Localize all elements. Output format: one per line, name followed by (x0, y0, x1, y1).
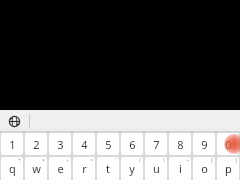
button[interactable]: 3 (49, 133, 71, 155)
button[interactable]: w (25, 157, 47, 180)
staticText: r (82, 161, 87, 176)
staticText: 8 (177, 137, 184, 152)
button[interactable]: u (145, 157, 167, 180)
staticText: + (18, 157, 21, 164)
staticText: 0 (225, 137, 232, 152)
staticText: u (153, 161, 160, 176)
staticText: \ (163, 157, 165, 164)
button[interactable]: t (97, 157, 119, 180)
staticText: 5 (105, 137, 112, 152)
staticText: 4 (81, 137, 88, 152)
staticText: × (42, 157, 45, 164)
button[interactable]: 0 (217, 133, 239, 155)
staticText: 9 (201, 137, 208, 152)
button[interactable]: 7 (145, 133, 167, 155)
staticText: 2 (33, 137, 40, 152)
button[interactable]: y (121, 157, 143, 180)
staticText: o (201, 161, 208, 176)
staticText: e (57, 161, 64, 176)
button[interactable]: 4 (73, 133, 95, 155)
staticText: [ (211, 157, 213, 164)
staticText: ] (235, 157, 237, 164)
staticText: / (139, 157, 141, 164)
staticText: i (179, 161, 182, 176)
staticText: 6 (129, 137, 136, 152)
staticText: 1 (9, 137, 16, 152)
button[interactable] (30, 110, 240, 132)
button[interactable]: p (217, 157, 239, 180)
button[interactable]: 1 (1, 133, 23, 155)
staticText: p (225, 161, 232, 176)
button[interactable]: Switch language (0, 110, 29, 132)
staticText: t (106, 161, 110, 176)
staticText: 7 (153, 137, 160, 152)
button[interactable]: q (1, 157, 23, 180)
button[interactable]: 9 (193, 133, 215, 155)
staticText: ` (115, 157, 117, 164)
staticText: ÷ (66, 157, 69, 164)
button[interactable]: 2 (25, 133, 47, 155)
staticText: y (129, 161, 135, 176)
staticText: q (9, 161, 16, 176)
staticText: w (32, 161, 41, 176)
staticText: 3 (57, 137, 64, 152)
button[interactable]: e (49, 157, 71, 180)
button[interactable]: 8 (169, 133, 191, 155)
staticText: = (90, 157, 93, 164)
button[interactable]: r (73, 157, 95, 180)
button[interactable]: 6 (121, 133, 143, 155)
button[interactable]: o (193, 157, 215, 180)
button[interactable]: i (169, 157, 191, 180)
button[interactable]: 5 (97, 133, 119, 155)
staticText: ¬ (186, 157, 189, 164)
